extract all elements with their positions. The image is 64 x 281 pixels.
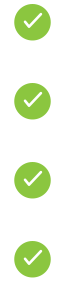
button[interactable]: Completed item 2 [14,83,51,119]
button[interactable]: Completed item 1 [14,4,51,40]
button[interactable]: Completed item 3 [14,162,51,198]
button[interactable]: Completed item 4 [14,241,51,277]
